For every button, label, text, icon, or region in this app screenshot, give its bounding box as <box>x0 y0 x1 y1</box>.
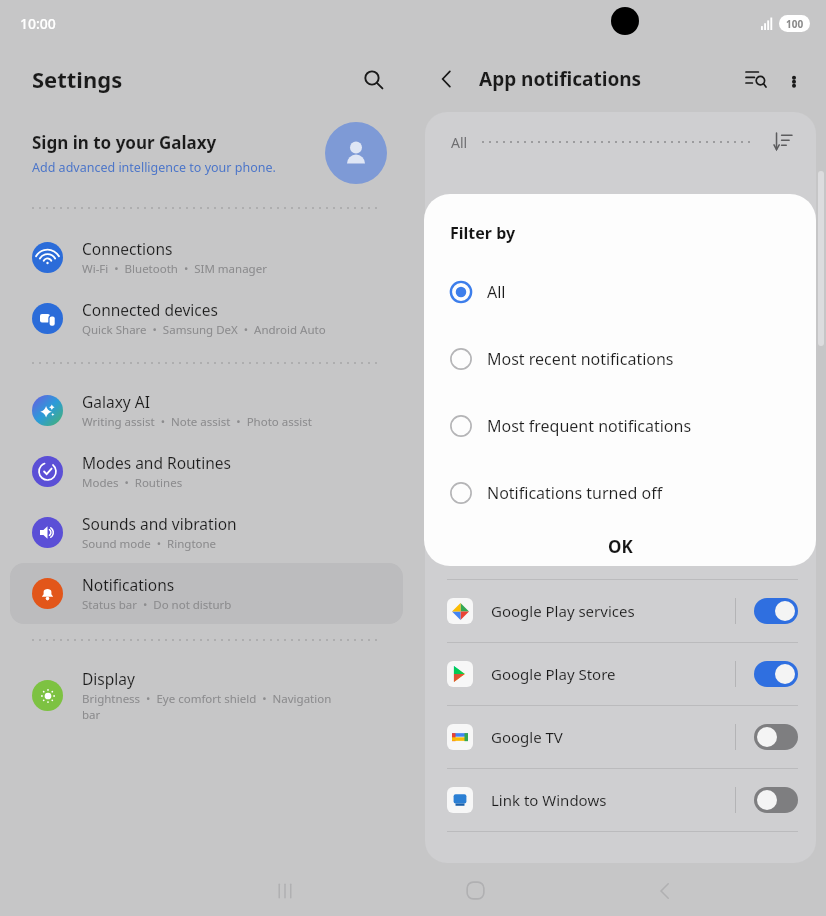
staticText: Sound mode • Ringtone <box>82 536 217 552</box>
staticText: Notifications <box>82 574 175 595</box>
button[interactable]: Most frequent notifications <box>424 392 816 459</box>
staticText: Connected devices <box>82 299 218 320</box>
button[interactable]: Sort <box>766 125 800 159</box>
button[interactable]: Toggle Google TV <box>754 724 798 750</box>
staticText: Galaxy AI <box>82 391 150 412</box>
button[interactable]: Connections <box>10 227 403 288</box>
staticText: Wi-Fi • Bluetooth • SIM manager <box>82 261 267 277</box>
staticText: Google Play services <box>491 601 635 621</box>
staticText: Sounds and vibration <box>82 513 237 534</box>
staticText: Brightness • Eye comfort shield • Naviga… <box>82 691 332 722</box>
button[interactable]: Sounds and vibration <box>10 502 403 563</box>
staticText: Connections <box>82 238 173 259</box>
staticText: All <box>487 281 506 303</box>
button[interactable]: Search <box>353 59 393 99</box>
staticText: Notifications turned off <box>487 482 663 504</box>
button[interactable]: Search apps <box>736 59 776 99</box>
button[interactable]: Display <box>10 657 403 733</box>
staticText: Display <box>82 668 135 689</box>
button[interactable]: Google <box>425 517 816 579</box>
button[interactable]: Connected devices <box>10 288 403 349</box>
staticText: All <box>451 133 468 152</box>
button[interactable]: Notifications turned off <box>424 459 816 526</box>
button[interactable]: Most recent notifications <box>424 325 816 392</box>
button[interactable]: Google TV <box>425 706 816 768</box>
button[interactable]: Google Play services <box>425 580 816 642</box>
button[interactable]: Back <box>427 59 467 99</box>
staticText: Google Play Store <box>491 664 616 684</box>
staticText: Status bar • Do not disturb <box>82 597 232 613</box>
staticText: Link to Windows <box>491 790 607 810</box>
button[interactable]: Toggle Google Play Store <box>754 661 798 687</box>
staticText: Most frequent notifications <box>487 415 692 437</box>
staticText: App notifications <box>479 66 642 92</box>
staticText: OK <box>608 535 633 558</box>
button[interactable]: Galaxy AI <box>10 380 403 441</box>
staticText: Quick Share • Samsung DeX • Android Auto <box>82 322 326 338</box>
staticText: Google TV <box>491 727 563 747</box>
button[interactable]: OK <box>424 526 816 566</box>
button[interactable]: Link to Windows <box>425 769 816 831</box>
staticText: Filter by <box>450 222 516 244</box>
button[interactable]: Sign in to your Galaxy <box>32 112 387 194</box>
staticText: Writing assist • Note assist • Photo ass… <box>82 414 312 430</box>
button[interactable]: All <box>424 258 816 325</box>
staticText: Add advanced intelligence to your phone. <box>32 159 276 176</box>
staticText: Sign in to your Galaxy <box>32 131 217 154</box>
button[interactable]: Modes and Routines <box>10 441 403 502</box>
staticText: 10:00 <box>20 14 56 33</box>
button[interactable]: Notifications <box>10 563 403 624</box>
staticText: Modes • Routines <box>82 475 183 491</box>
staticText: Settings <box>32 64 123 94</box>
staticText: Modes and Routines <box>82 452 231 473</box>
staticText: Most recent notifications <box>487 348 674 370</box>
button[interactable]: Toggle Google Play services <box>754 598 798 624</box>
button[interactable]: More options <box>776 61 812 97</box>
staticText: 100 <box>786 17 804 31</box>
button[interactable]: Google Play Store <box>425 643 816 705</box>
button[interactable]: Toggle Link to Windows <box>754 787 798 813</box>
